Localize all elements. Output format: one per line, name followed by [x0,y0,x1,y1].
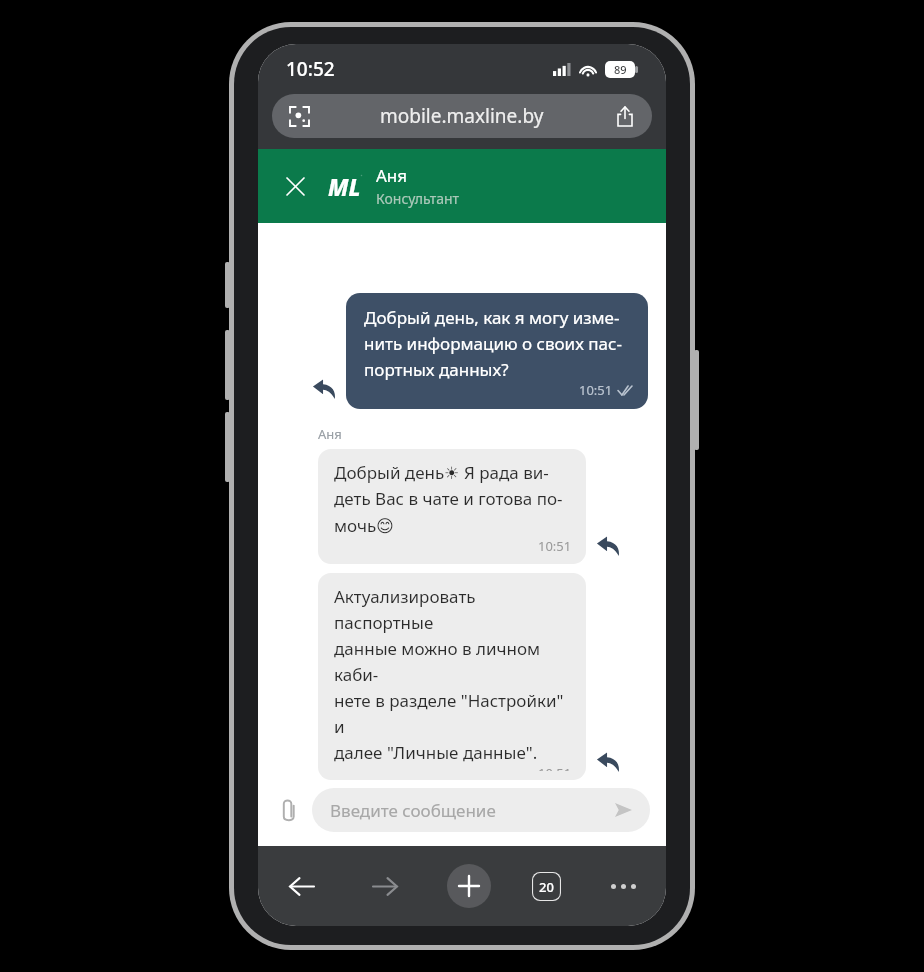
staticText: Консультант [376,189,460,208]
button[interactable]: Scan [272,94,652,138]
button[interactable]: Tabs: 20 [532,872,561,901]
other: Reply [596,750,620,774]
staticText: Добрый день☀️ Я рада ви- деть Вас в чате… [334,461,563,537]
staticText: 20 [539,878,554,896]
button[interactable]: Forward [364,865,406,907]
button[interactable]: Добрый день☀️ Я рада ви- деть Вас в чате… [318,449,586,564]
staticText: Аня [376,164,408,187]
staticText: 10:51 [579,381,613,399]
staticText: 89 [614,62,627,77]
other: Reply [312,377,336,401]
staticText: mobile.maxline.by [380,103,544,129]
staticText: Добрый день, как я могу изме- нить инфор… [364,306,622,381]
staticText: 10:51 [538,537,572,555]
staticText: ML [328,171,361,201]
button[interactable]: Close [278,169,312,203]
button[interactable]: New tab [447,864,491,908]
other: Reply [596,534,620,558]
other: Scan [288,105,310,127]
staticText: Актуализировать паспортные данные можно … [334,585,572,764]
button[interactable]: Введите сообщение [312,788,650,832]
staticText: 10:51 [538,764,572,771]
button[interactable]: Back [280,865,322,907]
staticText: Аня [318,425,342,443]
button[interactable]: Добрый день, как я могу изме- нить инфор… [346,293,648,409]
staticText: 10:52 [286,56,335,82]
button[interactable]: More options [602,865,644,907]
other: Send [615,803,632,817]
other: Share [614,105,636,127]
button[interactable]: Актуализировать паспортные данные можно … [318,573,586,780]
staticText: Введите сообщение [330,799,496,822]
button[interactable]: Attach file [274,795,304,825]
